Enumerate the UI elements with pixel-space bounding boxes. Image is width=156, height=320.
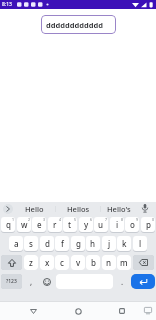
staticText: a [14,238,19,249]
staticText: 8:13 [2,1,12,8]
button[interactable] [142,304,154,316]
button[interactable]: v [71,255,85,270]
staticText: Hello's [107,204,131,214]
button[interactable]: r [48,217,62,232]
staticText: r [53,219,57,230]
staticText: 3 [43,217,46,222]
staticText: . [121,276,124,287]
staticText: 0 [152,217,155,222]
staticText: f [61,238,64,249]
button[interactable]: , [24,274,38,289]
staticText: 6 [90,217,93,222]
staticText: t [68,219,72,230]
staticText: g [76,238,81,249]
staticText: l [139,238,142,249]
button[interactable]: Hello's [101,203,137,214]
button[interactable]: m [117,255,131,270]
button[interactable]: ?123 [1,274,22,289]
button[interactable]: t [63,217,77,232]
button[interactable]: x [40,255,54,270]
button[interactable]: s [24,236,38,251]
button[interactable]: g [71,236,85,251]
staticText: c [60,257,64,268]
button[interactable] [133,255,154,270]
button[interactable]: u [94,217,108,232]
staticText: i [116,219,119,230]
button[interactable] [116,305,128,317]
staticText: 5 [74,217,77,222]
button[interactable]: c [55,255,69,270]
button[interactable] [27,305,39,317]
staticText: dddddddddddd [46,20,103,30]
staticText: 8 [121,217,124,222]
button[interactable]: Hellos [56,203,100,214]
button[interactable]: Hello [15,203,53,214]
staticText: 2 [28,217,31,222]
button[interactable]: b [86,255,100,270]
button[interactable]: n [102,255,116,270]
staticText: d [45,238,50,249]
staticText: q [6,219,11,230]
button[interactable]: y [79,217,93,232]
button[interactable]: p [141,217,155,232]
staticText: v [76,257,81,268]
staticText: 4 [59,217,62,222]
button[interactable] [72,305,84,317]
button[interactable]: i [110,217,124,232]
staticText: 1 [12,217,15,222]
staticText: w [21,219,28,230]
button[interactable]: l [133,236,147,251]
button[interactable] [1,255,22,270]
staticText: m [120,257,128,268]
button[interactable]: . [115,274,129,289]
staticText: k [122,238,127,249]
staticText: e [37,219,42,230]
staticText: Hellos [67,204,90,214]
button[interactable]: d [40,236,54,251]
button[interactable]: j [102,236,116,251]
staticText: s [29,238,33,249]
staticText: Hello [25,204,44,214]
staticText: p [146,219,151,230]
button[interactable]: k [117,236,131,251]
staticText: j [108,238,111,249]
button[interactable]: a [9,236,23,251]
button[interactable]: z [24,255,38,270]
button[interactable]: dddddddddddd [41,15,116,34]
button[interactable]: w [17,217,31,232]
staticText: h [90,238,96,249]
button[interactable]: o [125,217,139,232]
staticText: u [98,219,104,230]
staticText: 9 [136,217,139,222]
staticText: b [91,257,96,268]
button[interactable] [3,204,13,214]
button[interactable]: h [86,236,100,251]
staticText: z [29,257,33,268]
staticText: y [84,219,89,230]
staticText: x [45,257,50,268]
button[interactable] [131,274,155,289]
button[interactable]: f [55,236,69,251]
staticText: , [30,276,33,287]
staticText: n [106,257,112,268]
staticText: o [130,219,135,230]
button[interactable] [40,274,54,289]
button[interactable]: q [1,217,15,232]
staticText: ?123 [6,278,17,285]
staticText: 7 [105,217,108,222]
button[interactable]: e [32,217,46,232]
